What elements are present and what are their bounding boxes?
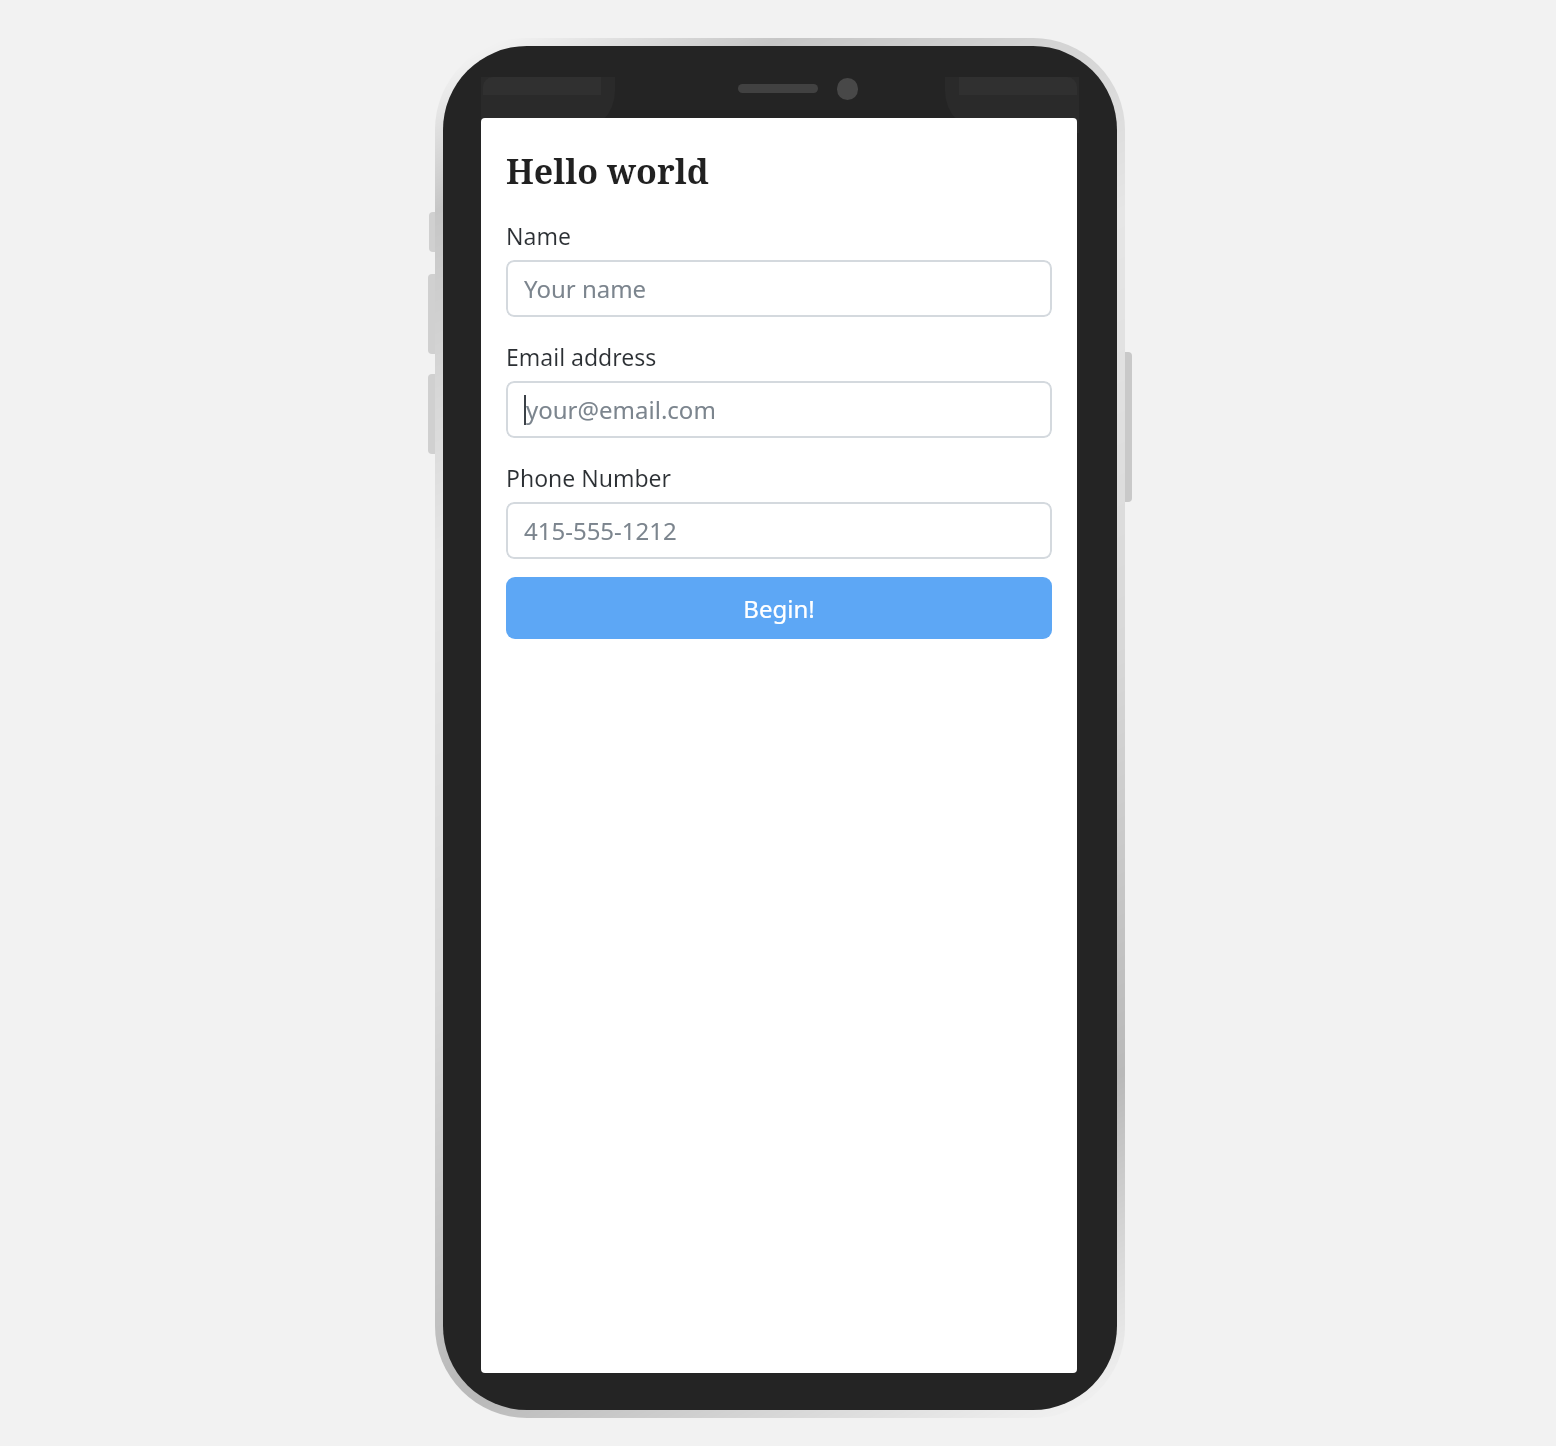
staticText: Email address [506,341,657,372]
staticText: Name [506,220,571,251]
staticText: Begin! [743,592,815,625]
button[interactable]: Begin! [506,577,1052,639]
staticText: Phone Number [506,462,672,493]
button[interactable]: Your name [506,260,1052,317]
staticText: Hello world [506,148,709,194]
button[interactable]: your@email.com [506,381,1052,438]
staticText: your@email.com [526,393,716,426]
other: Power [1119,352,1132,502]
staticText: Your name [524,272,647,305]
button[interactable]: 415-555-1212 [506,502,1052,559]
staticText: 415-555-1212 [524,514,677,547]
other: Volume down [428,374,441,454]
other: Mute switch [429,212,441,252]
